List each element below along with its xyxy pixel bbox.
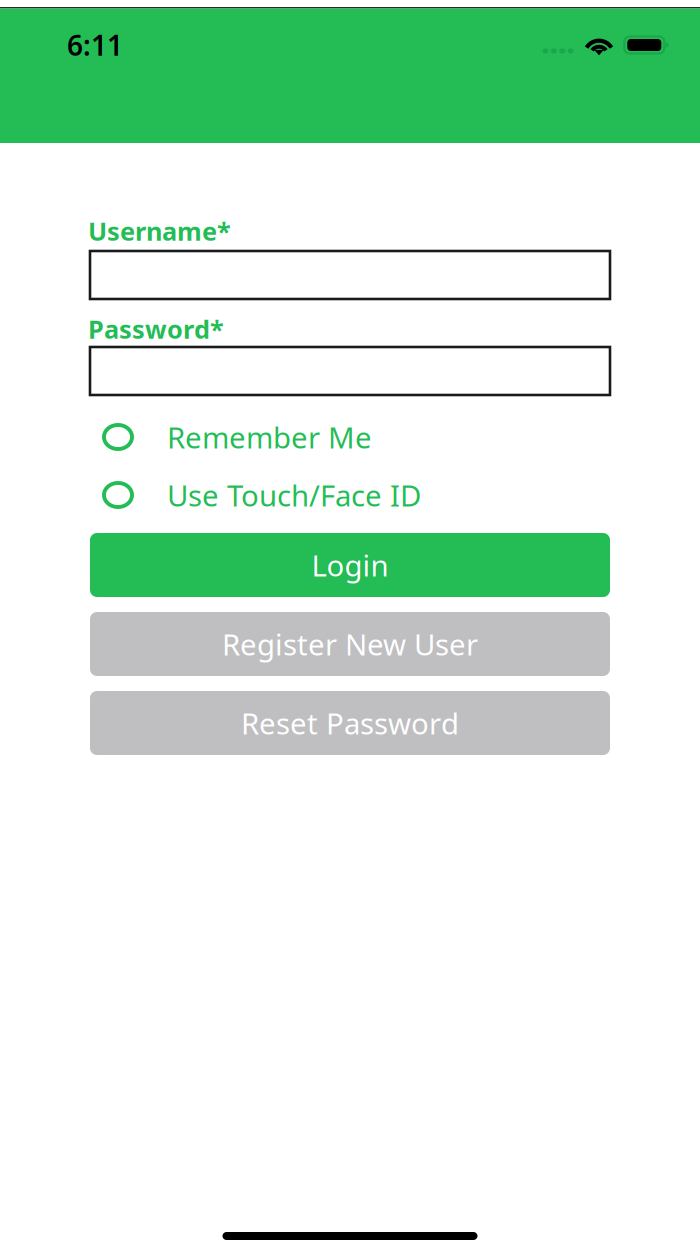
- staticText: Reset Password: [241, 703, 459, 742]
- button[interactable]: Username: [90, 251, 610, 299]
- button[interactable]: Register New User: [90, 612, 610, 676]
- staticText: Register New User: [222, 624, 478, 663]
- button[interactable]: Remember Me: [90, 408, 610, 466]
- staticText: 6:11: [67, 26, 123, 64]
- button[interactable]: Use Touch/Face ID: [90, 466, 610, 524]
- button[interactable]: Password: [90, 347, 610, 395]
- staticText: Username*: [88, 214, 231, 248]
- staticText: Password*: [88, 312, 224, 346]
- button[interactable]: Login: [90, 533, 610, 597]
- staticText: Login: [311, 545, 388, 584]
- button[interactable]: Reset Password: [90, 691, 610, 755]
- staticText: Use Touch/Face ID: [167, 475, 421, 514]
- staticText: Remember Me: [167, 417, 372, 456]
